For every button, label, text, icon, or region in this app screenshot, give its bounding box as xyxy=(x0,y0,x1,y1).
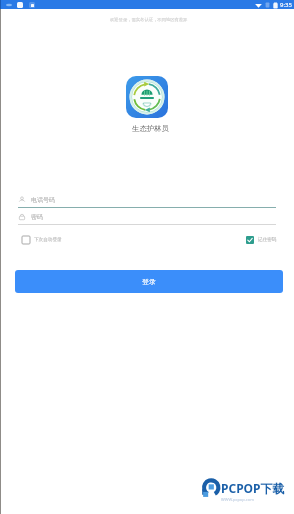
button[interactable]: 下次自动登录 xyxy=(22,236,62,244)
staticText: 欢迎登录，需实名认证，不同地区有差异 xyxy=(110,17,188,22)
staticText: 9:35 xyxy=(280,1,292,9)
button[interactable]: 电话号码 xyxy=(18,193,276,208)
button[interactable]: 记住密码 xyxy=(246,236,277,244)
other: 生态护林员 logo xyxy=(126,76,168,118)
staticText: 记住密码 xyxy=(258,237,277,243)
staticText: 生态护林员 xyxy=(132,124,169,133)
button[interactable]: 密码 xyxy=(18,210,276,225)
staticText: PCPOP下载 xyxy=(221,480,285,496)
button[interactable]: 登录 xyxy=(15,270,283,293)
staticText: 下次自动登录 xyxy=(34,237,62,243)
staticText: 登录 xyxy=(142,277,156,286)
staticText: WWW.pcpop.com xyxy=(221,497,254,502)
staticText: 密码 xyxy=(31,213,43,221)
staticText: 电话号码 xyxy=(31,196,55,204)
